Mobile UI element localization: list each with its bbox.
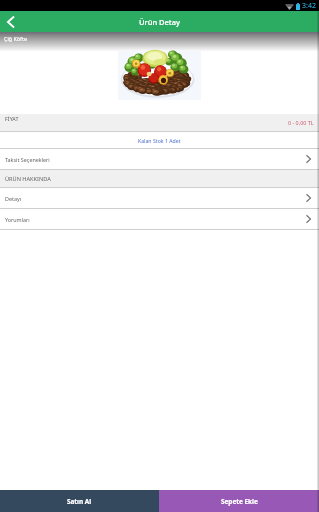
staticText: Satın Al <box>67 497 92 506</box>
staticText: Ürün Detay <box>139 17 180 27</box>
staticText: Yorumları <box>5 216 30 223</box>
button[interactable]: Satın Al <box>0 490 159 512</box>
staticText: FİYAT <box>5 115 19 122</box>
staticText: Detayı <box>5 195 22 202</box>
staticText: 3:42 <box>302 1 316 11</box>
staticText: Kalan Stok 1 Adet <box>138 137 181 144</box>
staticText: Taksit Seçenekleri <box>5 156 50 163</box>
staticText: Sepete Ekle <box>221 497 258 506</box>
button[interactable]: Back <box>0 11 21 32</box>
staticText: Çiğ Köfte <box>4 35 27 42</box>
staticText: ÜRÜN HAKKINDA <box>5 175 51 183</box>
button[interactable]: Sepete Ekle <box>159 490 319 512</box>
button[interactable]: Taksit Seçenekleri <box>0 149 319 169</box>
staticText: 0 - 0,00 TL <box>288 119 314 126</box>
button[interactable]: Detayı <box>0 188 319 208</box>
button[interactable]: Yorumları <box>0 209 319 229</box>
